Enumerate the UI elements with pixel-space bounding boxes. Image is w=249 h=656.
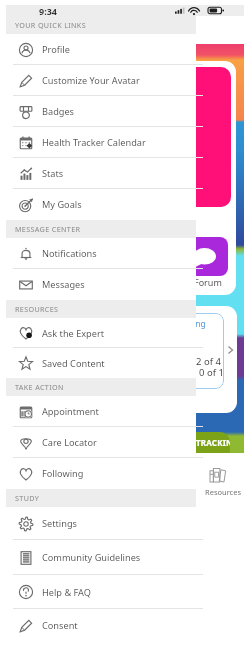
- button[interactable]: Settings: [6, 507, 196, 540]
- button[interactable]: Appointment: [6, 396, 196, 427]
- button[interactable]: Community Guidelines: [6, 540, 196, 575]
- staticText: YOUR QUICK LINKS: [15, 20, 86, 30]
- staticText: MESSAGE CENTER: [15, 224, 81, 234]
- button[interactable]: Help & FAQ: [6, 575, 196, 609]
- staticText: Forum: [194, 276, 222, 288]
- staticText: STUDY: [15, 493, 40, 503]
- staticText: 2 of 4: [196, 355, 221, 368]
- staticText: Consent: [42, 619, 78, 632]
- staticText: Community Guidelines: [42, 551, 141, 564]
- staticText: Ask the Expert: [42, 327, 105, 340]
- button[interactable]: Messages: [6, 269, 196, 300]
- button[interactable]: Badges: [6, 96, 196, 127]
- staticText: Appointment: [42, 405, 99, 418]
- staticText: Notifications: [42, 247, 97, 260]
- staticText: Following: [42, 467, 84, 480]
- button[interactable]: Consent: [6, 609, 196, 642]
- button[interactable]: Health Tracker Calendar: [6, 127, 196, 158]
- staticText: TAKE ACTION: [15, 382, 64, 392]
- staticText: Care Locator: [42, 436, 97, 449]
- staticText: Stats: [42, 167, 64, 180]
- button[interactable]: Notifications: [6, 238, 196, 269]
- staticText: Badges: [42, 105, 75, 118]
- staticText: Settings: [42, 517, 77, 530]
- staticText: Help & FAQ: [42, 586, 91, 599]
- button[interactable]: Ask the Expert: [6, 318, 196, 348]
- staticText: RESOURCES: [15, 304, 59, 314]
- button[interactable]: Resources: [199, 463, 244, 495]
- staticText: TRACKING: [196, 437, 230, 448]
- button[interactable]: Profile: [6, 34, 196, 65]
- staticText: Messages: [42, 278, 85, 291]
- button[interactable]: Stats: [6, 158, 196, 189]
- staticText: Customize Your Avatar: [42, 74, 140, 87]
- button[interactable]: Customize Your Avatar: [6, 65, 196, 96]
- staticText: Resources: [205, 487, 242, 497]
- staticText: Saved Content: [42, 357, 105, 370]
- button[interactable]: Care Locator: [6, 427, 196, 458]
- staticText: My Goals: [42, 198, 82, 211]
- staticText: Profile: [42, 43, 70, 56]
- staticText: 0 of 1: [199, 366, 224, 379]
- staticText: 9:34: [39, 5, 57, 16]
- button[interactable]: Saved Content: [6, 348, 196, 378]
- button[interactable]: Following: [6, 458, 196, 489]
- staticText: Tracking: [172, 318, 206, 330]
- button[interactable]: My Goals: [6, 189, 196, 220]
- staticText: Health Tracker Calendar: [42, 136, 146, 149]
